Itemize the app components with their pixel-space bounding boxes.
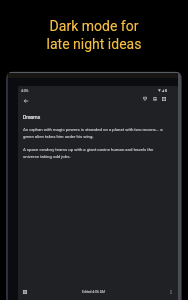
button[interactable]: Archive: [159, 94, 169, 104]
staticText: 4:06: [21, 88, 29, 92]
button[interactable]: More options: [164, 285, 178, 299]
staticText: An orphan with magic powers is stranded …: [23, 127, 163, 139]
button[interactable]: Reminder: [150, 94, 160, 104]
staticText: Dark mode for late night ideas: [0, 18, 188, 53]
staticText: Edited 4:06 AM: [82, 290, 105, 294]
button[interactable]: Back: [19, 94, 33, 108]
staticText: Dreams: [23, 114, 41, 120]
staticText: A space cowboy teams up with a giant can…: [23, 147, 154, 159]
button[interactable]: Pin note: [140, 94, 150, 104]
button[interactable]: Add: [18, 285, 32, 299]
